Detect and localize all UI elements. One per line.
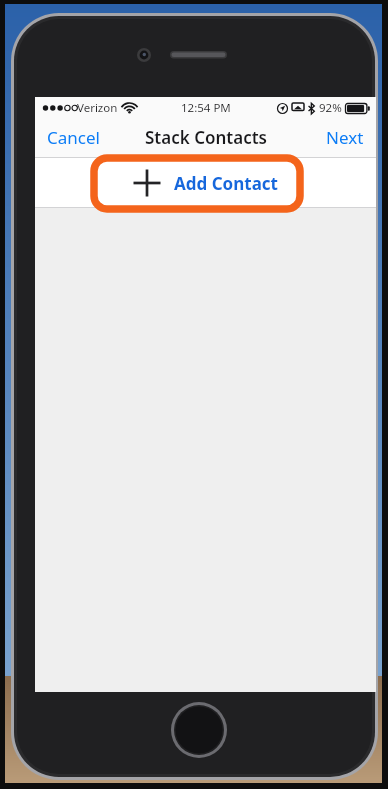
staticText: Next (326, 126, 364, 149)
button[interactable]: Cancel (35, 118, 112, 157)
staticText: Verizon (77, 100, 118, 116)
staticText: Cancel (47, 126, 100, 149)
staticText: 12:54 PM (181, 100, 231, 116)
button[interactable]: Next (314, 118, 376, 157)
other: Add (133, 169, 161, 197)
staticText: 92% (319, 100, 342, 116)
staticText: Add Contact (174, 172, 278, 195)
button[interactable]: Add (35, 158, 376, 207)
staticText: Stack Contacts (145, 126, 267, 149)
